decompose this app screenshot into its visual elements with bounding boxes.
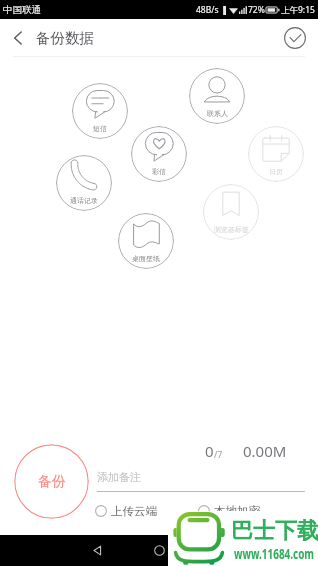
staticText: 短信	[93, 124, 107, 133]
button[interactable]: 彩信	[131, 126, 187, 182]
staticText: 浏览器标签	[214, 225, 249, 234]
staticText: 巴士下载	[231, 517, 318, 545]
button[interactable]: 上传云端	[95, 502, 157, 520]
button[interactable]: Back	[8, 19, 94, 57]
staticText: 备份	[38, 473, 66, 491]
staticText: 备份数据	[36, 29, 94, 47]
staticText: 联系人	[207, 109, 228, 118]
button[interactable]: 本地加密	[198, 502, 260, 520]
staticText: /7	[214, 448, 223, 460]
staticText: www.11684.com	[234, 544, 315, 563]
staticText: 0	[205, 441, 214, 461]
staticText: 上传云端	[111, 504, 157, 518]
button[interactable]: Back	[78, 535, 116, 566]
staticText: 通话记录	[70, 196, 98, 205]
button[interactable]: Confirm backup	[283, 26, 307, 50]
staticText: 72%	[248, 4, 265, 16]
staticText: 本地加密	[214, 504, 260, 518]
staticText: 彩信	[152, 167, 166, 176]
button[interactable]: 桌面壁纸	[118, 213, 174, 269]
staticText: 上午9:15	[281, 4, 315, 16]
button[interactable]: 浏览器标签	[203, 184, 259, 240]
button[interactable]: 备份	[14, 444, 89, 519]
button[interactable]: Home	[140, 535, 178, 566]
staticText: 日历	[269, 167, 283, 176]
staticText: 0.00M	[243, 441, 287, 461]
staticText: 中国联通	[3, 4, 41, 16]
other: Back	[8, 28, 28, 48]
button[interactable]: 短信	[72, 83, 128, 139]
staticText: 48B/s	[196, 4, 219, 16]
button[interactable]: Recents	[202, 535, 240, 566]
button[interactable]: 日历	[248, 126, 304, 182]
button[interactable]: 通话记录	[56, 155, 112, 211]
staticText: 桌面壁纸	[132, 254, 160, 263]
button[interactable]: 添加备注	[97, 470, 141, 484]
button[interactable]: 联系人	[189, 68, 245, 124]
